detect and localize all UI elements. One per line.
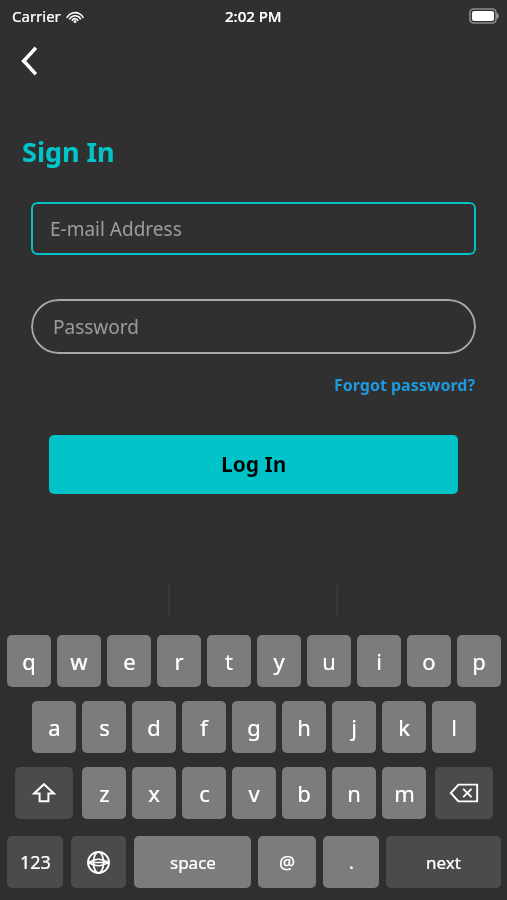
button[interactable]: Password (31, 299, 476, 354)
button[interactable]: next (386, 836, 501, 888)
staticText: k (398, 712, 410, 742)
staticText: Forgot password? (334, 374, 476, 396)
staticText: w (70, 646, 88, 676)
staticText: b (297, 778, 311, 808)
button[interactable]: u (307, 635, 351, 687)
button[interactable]: h (282, 701, 326, 753)
staticText: Carrier (12, 6, 61, 26)
staticText: m (394, 778, 415, 808)
staticText: next (426, 851, 461, 874)
staticText: u (322, 646, 336, 676)
staticText: v (248, 778, 260, 808)
button[interactable]: o (407, 635, 451, 687)
button[interactable]: Change keyboard (71, 836, 126, 888)
button[interactable]: x (132, 767, 176, 819)
staticText: Password (53, 314, 139, 340)
staticText: 2:02 PM (225, 6, 282, 26)
staticText: e (123, 646, 136, 676)
staticText: @ (279, 850, 296, 875)
button[interactable]: y (257, 635, 301, 687)
button[interactable]: Backspace (435, 767, 493, 819)
button[interactable]: i (357, 635, 401, 687)
staticText: f (200, 712, 208, 742)
staticText: t (225, 646, 233, 676)
button[interactable]: f (182, 701, 226, 753)
button[interactable]: j (332, 701, 376, 753)
staticText: y (273, 646, 285, 676)
button[interactable]: e (107, 635, 151, 687)
button[interactable]: n (332, 767, 376, 819)
button[interactable]: space (134, 836, 251, 888)
button[interactable]: g (232, 701, 276, 753)
button[interactable]: k (382, 701, 426, 753)
button[interactable]: v (232, 767, 276, 819)
staticText: 123 (20, 850, 51, 875)
button[interactable]: d (132, 701, 176, 753)
staticText: c (199, 778, 210, 808)
staticText: r (174, 646, 184, 676)
staticText: x (148, 778, 160, 808)
button[interactable]: w (57, 635, 101, 687)
button[interactable]: c (182, 767, 226, 819)
button[interactable]: p (457, 635, 501, 687)
staticText: a (48, 712, 61, 742)
staticText: g (247, 712, 261, 742)
button[interactable]: l (432, 701, 476, 753)
button[interactable]: Back (6, 38, 52, 84)
button[interactable]: r (157, 635, 201, 687)
staticText: n (347, 778, 361, 808)
button[interactable]: b (282, 767, 326, 819)
staticText: Log In (221, 450, 287, 479)
button[interactable]: Log In (49, 435, 458, 494)
staticText: E-mail Address (50, 216, 182, 242)
button[interactable]: . (323, 836, 379, 888)
button[interactable]: E-mail Address (31, 202, 476, 255)
staticText: space (170, 851, 216, 874)
staticText: z (99, 778, 110, 808)
staticText: i (376, 646, 382, 676)
staticText: s (99, 712, 110, 742)
staticText: o (422, 646, 436, 676)
staticText: d (147, 712, 161, 742)
button[interactable]: z (82, 767, 126, 819)
button[interactable]: m (382, 767, 426, 819)
button[interactable]: @ (258, 836, 316, 888)
button[interactable]: Shift (15, 767, 73, 819)
staticText: h (297, 712, 311, 742)
staticText: p (472, 646, 486, 676)
staticText: Sign In (22, 133, 115, 170)
staticText: q (22, 646, 36, 676)
staticText: . (349, 850, 354, 875)
button[interactable]: t (207, 635, 251, 687)
staticText: j (351, 712, 357, 742)
button[interactable]: Forgot password? (332, 371, 478, 399)
button[interactable]: a (32, 701, 76, 753)
button[interactable]: s (82, 701, 126, 753)
button[interactable]: q (7, 635, 51, 687)
button[interactable]: 123 (7, 836, 63, 888)
staticText: l (451, 712, 457, 742)
